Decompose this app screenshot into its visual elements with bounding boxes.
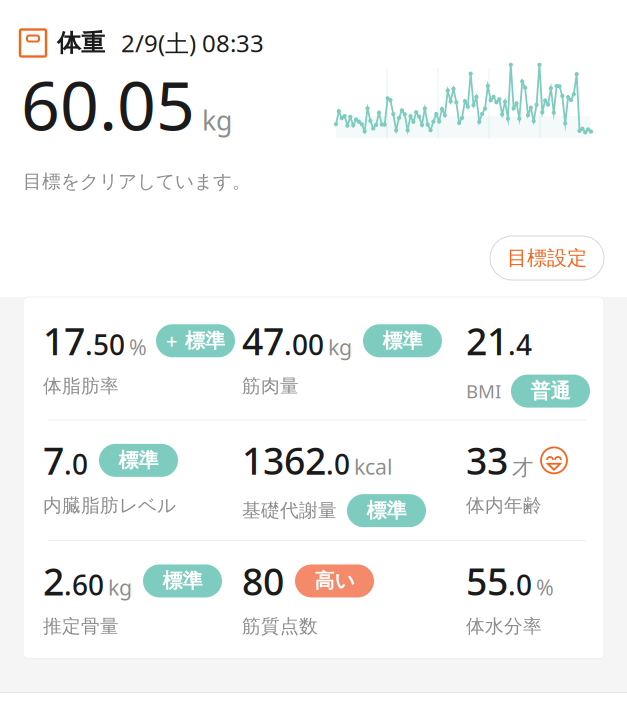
staticText: kg [328, 333, 352, 361]
staticText: 筋肉量 [242, 375, 299, 397]
staticText: 内臓脂肪レベル [43, 494, 176, 517]
staticText: 筋質点数 [242, 615, 318, 638]
staticText: 80 [242, 556, 284, 606]
staticText: .00 [284, 326, 324, 363]
staticText: % [536, 573, 554, 601]
staticText: % [129, 333, 147, 361]
staticText: 標準 [162, 569, 202, 593]
staticText: 7 [43, 436, 64, 485]
staticText: 標準 [185, 328, 225, 353]
staticText: + [166, 327, 177, 354]
staticText: .0 [64, 445, 88, 483]
staticText: 目標をクリアしています。 [23, 170, 251, 193]
button[interactable]: 目標設定 [490, 236, 604, 280]
staticText: 体重 [57, 28, 105, 58]
staticText: 体水分率 [466, 615, 542, 638]
staticText: 普通 [530, 379, 570, 403]
staticText: 標準 [382, 328, 422, 353]
staticText: 基礎代謝量 [242, 499, 337, 522]
staticText: 47 [242, 316, 284, 366]
staticText: 才 [512, 455, 533, 481]
staticText: 60.05 [21, 59, 195, 149]
staticText: 2/9(土) 08:33 [121, 27, 264, 59]
staticText: 推定骨量 [43, 615, 119, 638]
staticText: 体内年齢 [466, 494, 542, 517]
staticText: kcal [354, 452, 393, 481]
staticText: 体脂肪率 [43, 375, 119, 397]
staticText: BMI [466, 379, 501, 403]
staticText: 33 [466, 436, 508, 485]
staticText: 21 [466, 316, 508, 366]
staticText: .50 [85, 326, 125, 363]
staticText: 目標設定 [507, 246, 587, 270]
staticText: .4 [508, 326, 532, 363]
staticText: .0 [508, 566, 532, 603]
staticText: 高い [314, 569, 354, 593]
staticText: kg [108, 573, 132, 601]
staticText: kg [202, 102, 232, 138]
staticText: 標準 [366, 498, 406, 523]
staticText: 55 [466, 556, 508, 606]
staticText: 標準 [118, 448, 158, 473]
staticText: 2 [43, 556, 64, 606]
staticText: .0 [326, 445, 350, 483]
staticText: 1362 [242, 436, 326, 485]
staticText: 17 [43, 316, 85, 366]
staticText: .60 [64, 566, 104, 603]
